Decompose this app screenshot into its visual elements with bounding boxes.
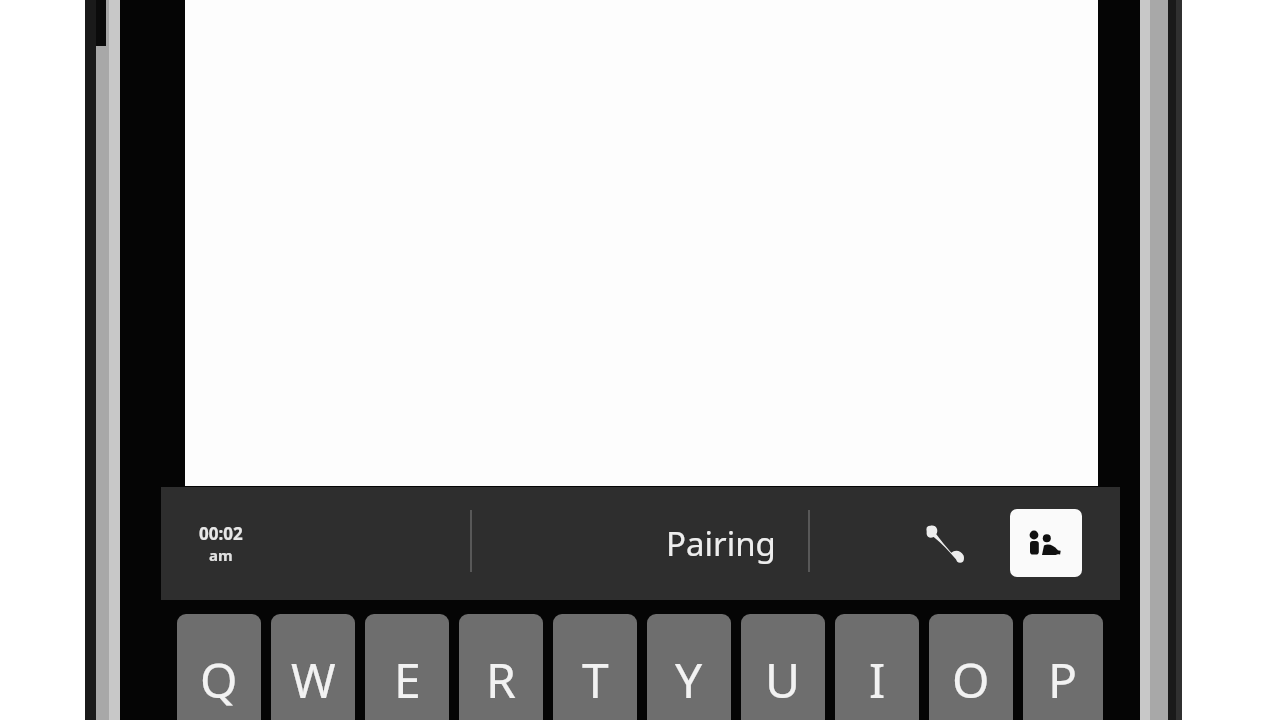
staticText: Q	[200, 647, 238, 712]
staticText: W	[291, 647, 336, 712]
button[interactable]: I	[835, 614, 919, 720]
staticText: T	[582, 647, 609, 712]
button[interactable]: P	[1023, 614, 1103, 720]
button[interactable]: R	[459, 614, 543, 720]
staticText: Pairing	[666, 521, 776, 566]
button[interactable]: E	[365, 614, 449, 720]
staticText: P	[1048, 647, 1078, 712]
button[interactable]: Y	[647, 614, 731, 720]
button[interactable]: T	[553, 614, 637, 720]
staticText: R	[486, 647, 516, 712]
staticText: E	[394, 647, 421, 712]
staticText: 00:02	[199, 522, 243, 545]
staticText: O	[952, 647, 990, 712]
button[interactable]: W	[271, 614, 355, 720]
button[interactable]: U	[741, 614, 825, 720]
button[interactable]: O	[929, 614, 1013, 720]
button[interactable]: Pairing	[472, 487, 969, 600]
staticText: am	[209, 545, 233, 565]
button[interactable]: Contacts	[1010, 509, 1082, 577]
staticText: Y	[675, 647, 703, 712]
staticText: U	[765, 647, 801, 712]
staticText: I	[869, 647, 886, 712]
button[interactable]: 00:02	[193, 518, 249, 569]
button[interactable]: Call	[913, 511, 979, 577]
button[interactable]: Q	[177, 614, 261, 720]
